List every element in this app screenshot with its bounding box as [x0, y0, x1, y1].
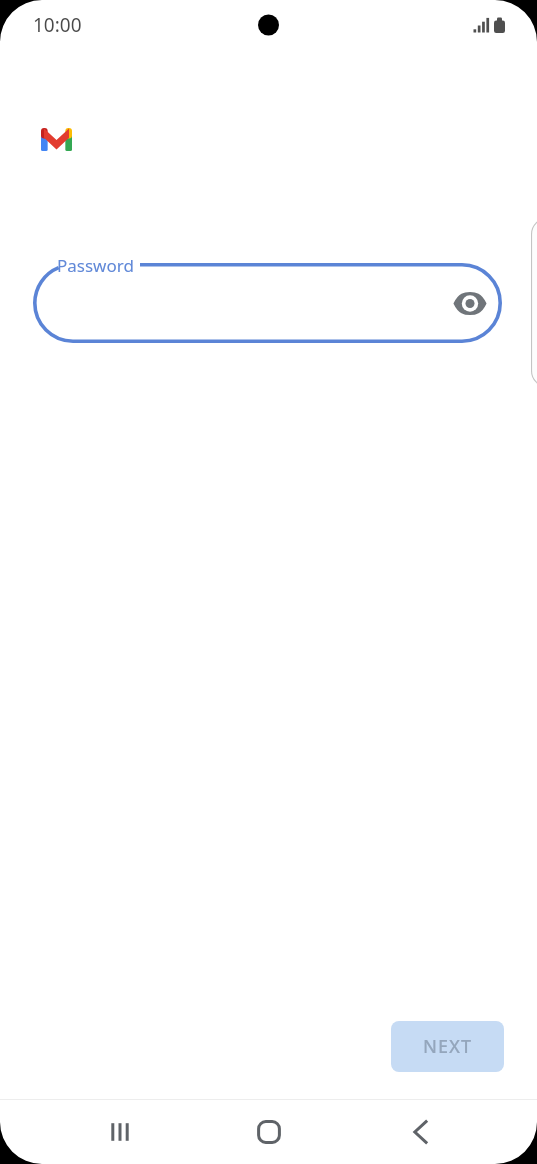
button[interactable]: NEXT: [391, 1021, 504, 1072]
button[interactable]: Show password: [446, 279, 494, 327]
button[interactable]: Recent apps: [90, 1102, 150, 1162]
button[interactable]: Home: [239, 1102, 299, 1162]
button[interactable]: Password input field: [33, 263, 502, 343]
staticText: NEXT: [423, 1034, 473, 1059]
button[interactable]: Back: [391, 1102, 451, 1162]
staticText: 10:00: [33, 12, 82, 38]
staticText: Password: [57, 254, 134, 277]
